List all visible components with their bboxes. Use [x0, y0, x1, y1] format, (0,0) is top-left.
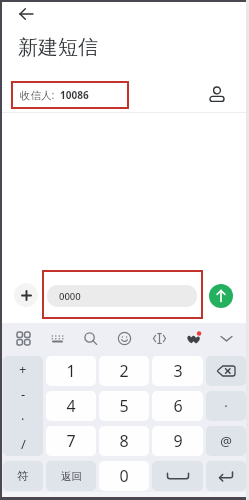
- staticText: 新建短信: [18, 35, 98, 60]
- button[interactable]: /: [3, 431, 43, 456]
- button[interactable]: Emoji: [111, 325, 137, 351]
- button[interactable]: Space: [152, 461, 203, 491]
- staticText: 5: [119, 395, 129, 417]
- staticText: 收信人:: [20, 88, 55, 102]
- button[interactable]: +: [3, 356, 43, 381]
- button[interactable]: Send: [209, 284, 233, 308]
- button[interactable]: Add attachment: [14, 283, 38, 307]
- button[interactable]: Keyboard layout: [44, 325, 70, 351]
- staticText: 返回: [61, 470, 82, 483]
- staticText: @: [220, 432, 232, 450]
- staticText: 7: [66, 430, 76, 452]
- button[interactable]: Search: [77, 325, 103, 351]
- staticText: 0000: [59, 290, 81, 303]
- button[interactable]: ·: [206, 391, 246, 421]
- button[interactable]: 2: [99, 356, 149, 386]
- button[interactable]: 6: [152, 391, 203, 421]
- button[interactable]: 1: [46, 356, 96, 386]
- button[interactable]: 9: [152, 426, 203, 456]
- button[interactable]: @: [206, 426, 246, 456]
- button[interactable]: 3: [152, 356, 203, 386]
- button[interactable]: 7: [46, 426, 96, 456]
- staticText: -: [21, 385, 26, 403]
- staticText: ·: [224, 397, 228, 415]
- staticText: 2: [119, 360, 129, 382]
- staticText: 9: [173, 430, 183, 452]
- staticText: 1: [66, 360, 76, 382]
- staticText: 0: [119, 465, 129, 487]
- button[interactable]: Apps: [10, 325, 36, 351]
- button[interactable]: Move cursor: [146, 325, 172, 351]
- button[interactable]: 符: [3, 461, 43, 491]
- staticText: 8: [119, 430, 129, 452]
- button[interactable]: 收信人:: [0, 78, 249, 112]
- button[interactable]: Enter: [206, 461, 246, 491]
- button[interactable]: Choose contact: [207, 85, 227, 105]
- button[interactable]: -: [3, 381, 43, 406]
- button[interactable]: Stickers: [180, 325, 206, 351]
- button[interactable]: 8: [99, 426, 149, 456]
- staticText: 10086: [60, 88, 89, 102]
- button[interactable]: Hide keyboard: [213, 325, 239, 351]
- staticText: ·: [21, 410, 25, 428]
- button[interactable]: ·: [3, 406, 43, 431]
- button[interactable]: 0000: [47, 285, 197, 307]
- staticText: 符: [17, 469, 29, 483]
- staticText: 4: [66, 395, 76, 417]
- button[interactable]: Delete: [206, 356, 246, 386]
- button[interactable]: 0: [99, 461, 149, 491]
- button[interactable]: 返回: [46, 461, 96, 491]
- button[interactable]: Back: [14, 2, 40, 28]
- staticText: 6: [173, 395, 183, 417]
- staticText: +: [19, 360, 27, 378]
- button[interactable]: 4: [46, 391, 96, 421]
- staticText: 3: [173, 360, 183, 382]
- button[interactable]: 5: [99, 391, 149, 421]
- staticText: /: [21, 435, 26, 453]
